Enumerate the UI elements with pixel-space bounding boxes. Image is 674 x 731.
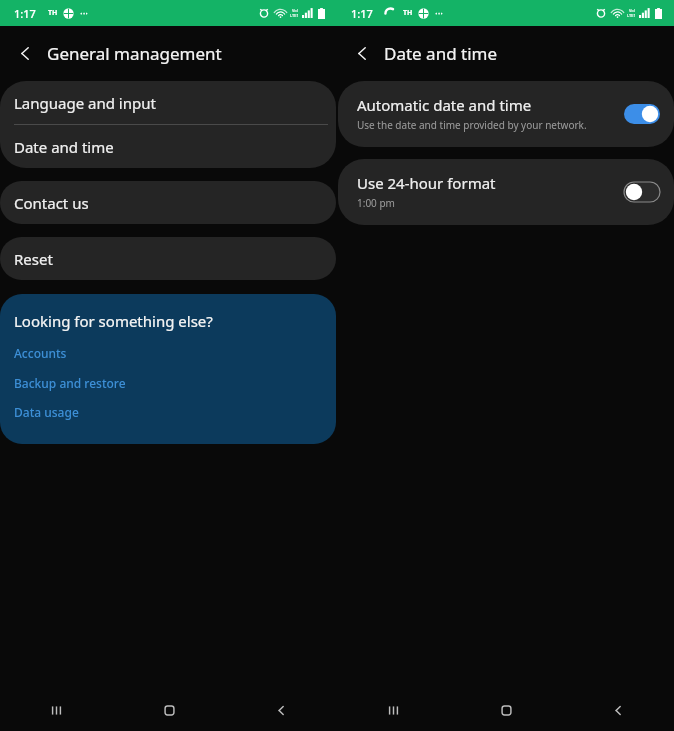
- staticText: TH: [48, 8, 58, 18]
- button[interactable]: Recent apps: [0, 690, 113, 731]
- button[interactable]: Back: [562, 690, 674, 731]
- staticText: Date and time: [14, 137, 114, 157]
- staticText: Date and time: [384, 42, 498, 65]
- staticText: Backup and restore: [14, 375, 126, 391]
- staticText: ···: [80, 6, 89, 20]
- staticText: Language and input: [14, 93, 156, 113]
- button[interactable]: Automatic date and time: [338, 81, 674, 147]
- staticText: Vol: [292, 8, 298, 13]
- staticText: 1:00 pm: [357, 196, 395, 210]
- button[interactable]: Language and input: [0, 81, 336, 124]
- button[interactable]: Reset: [0, 237, 336, 280]
- button[interactable]: Accounts: [14, 345, 67, 361]
- button[interactable]: Back: [225, 690, 337, 731]
- staticText: Reset: [14, 249, 53, 269]
- button[interactable]: Use 24-hour format: [338, 159, 674, 225]
- staticText: Contact us: [14, 193, 89, 213]
- staticText: Data usage: [14, 404, 79, 420]
- staticText: LTE1: [290, 13, 299, 18]
- staticText: Use 24-hour format: [357, 173, 496, 193]
- button[interactable]: Navigate up: [347, 38, 377, 68]
- staticText: Use the date and time provided by your n…: [357, 118, 587, 132]
- staticText: 1:17: [14, 6, 36, 21]
- button[interactable]: Home: [113, 690, 225, 731]
- staticText: TH: [403, 8, 413, 18]
- button[interactable]: Off: [624, 182, 660, 202]
- button[interactable]: Date and time: [0, 125, 336, 168]
- button[interactable]: Recent apps: [337, 690, 450, 731]
- button[interactable]: On: [624, 104, 660, 124]
- button[interactable]: Navigate up: [10, 38, 40, 68]
- staticText: General management: [47, 42, 222, 65]
- staticText: Accounts: [14, 345, 67, 361]
- staticText: LTE1: [627, 13, 636, 18]
- button[interactable]: Backup and restore: [14, 375, 126, 391]
- button[interactable]: Home: [450, 690, 562, 731]
- staticText: ···: [435, 6, 444, 20]
- staticText: Looking for something else?: [14, 311, 213, 331]
- button[interactable]: Contact us: [0, 181, 336, 224]
- staticText: 1:17: [351, 6, 373, 21]
- button[interactable]: Data usage: [14, 404, 79, 420]
- staticText: Automatic date and time: [357, 95, 532, 115]
- staticText: Vol: [629, 8, 635, 13]
